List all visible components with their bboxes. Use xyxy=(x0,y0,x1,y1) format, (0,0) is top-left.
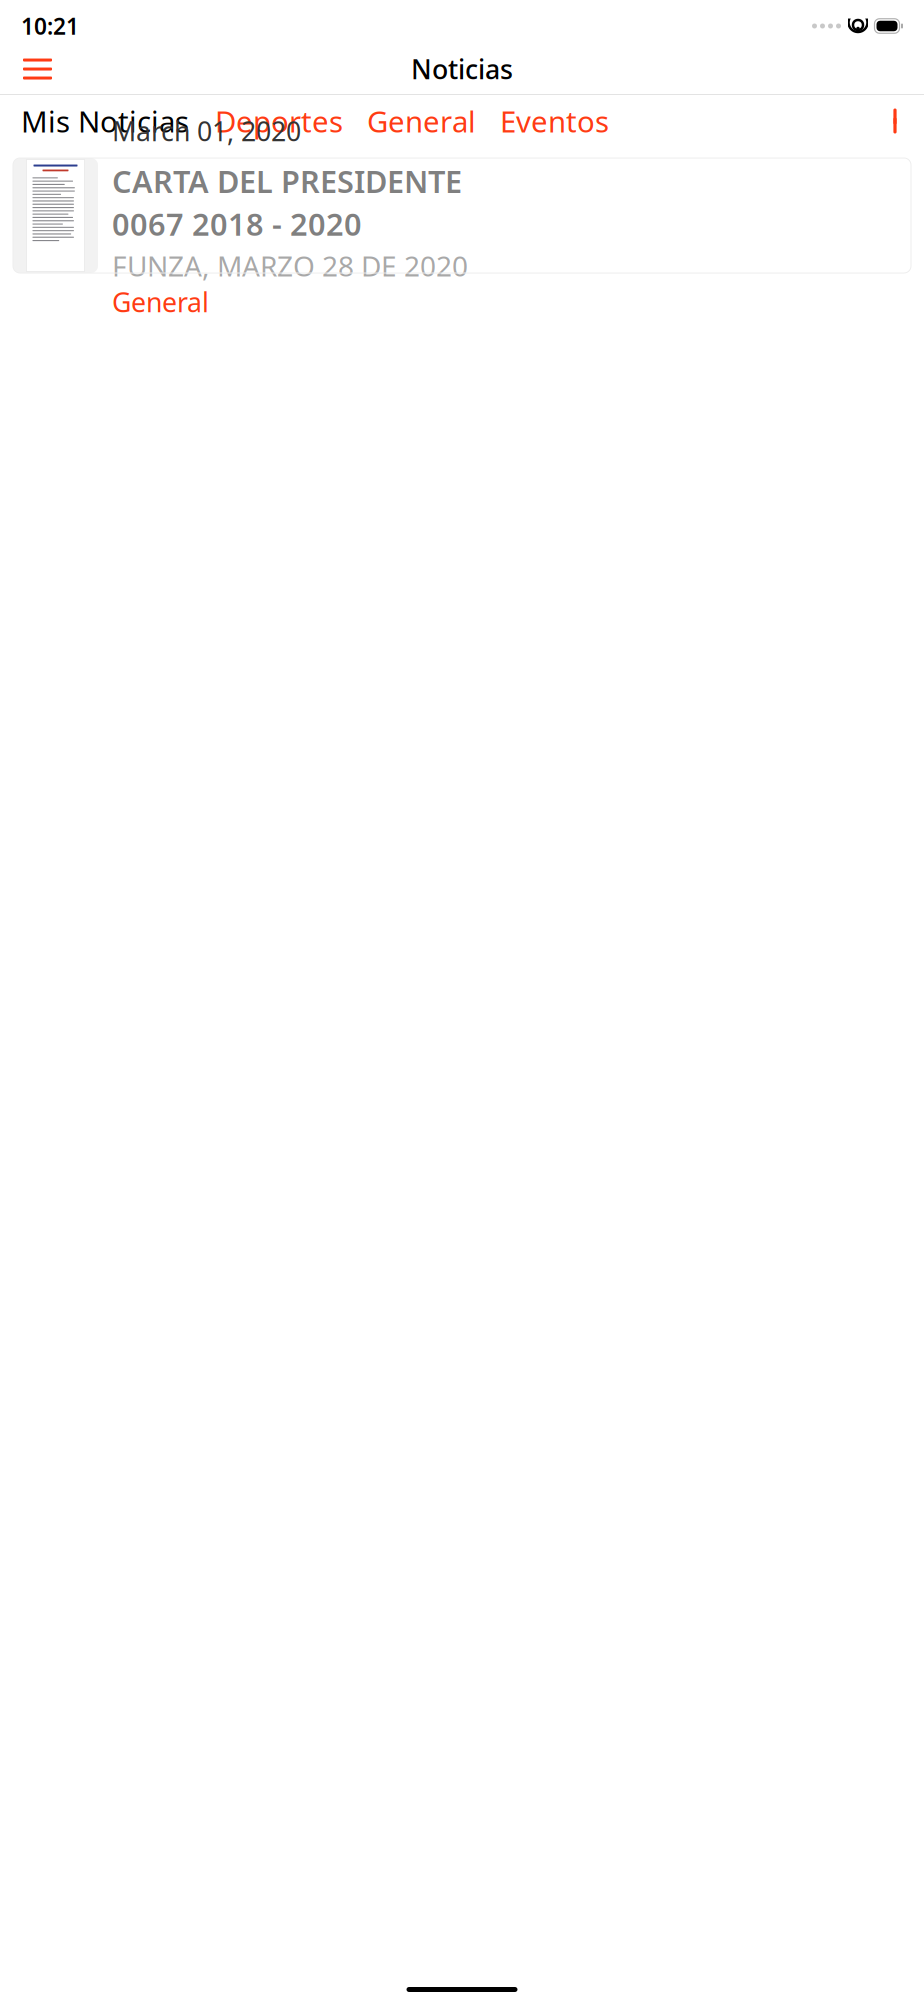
staticText: Eventos xyxy=(500,101,609,140)
staticText: CARTA DEL PRESIDENTE xyxy=(112,161,462,201)
staticText: General xyxy=(112,284,209,320)
button[interactable]: Mis Noticias xyxy=(13,93,197,148)
staticText: Noticias xyxy=(411,51,513,87)
button[interactable]: March 01, 2020 xyxy=(13,158,911,273)
button[interactable]: Menu xyxy=(11,46,64,91)
button[interactable]: Deportes xyxy=(207,93,351,148)
staticText: 10:21 xyxy=(21,11,79,41)
button[interactable]: General xyxy=(359,93,484,148)
staticText: Mis Noticias xyxy=(21,101,189,140)
staticText: March 01, 2020 xyxy=(112,113,301,149)
staticText: General xyxy=(367,101,476,140)
button[interactable]: Eventos xyxy=(492,93,617,148)
staticText: 0067 2018 - 2020 xyxy=(112,203,362,244)
staticText: FUNZA, MARZO 28 DE 2020 xyxy=(112,247,468,284)
staticText: Deportes xyxy=(215,101,343,140)
button[interactable]: More categories xyxy=(883,100,911,142)
